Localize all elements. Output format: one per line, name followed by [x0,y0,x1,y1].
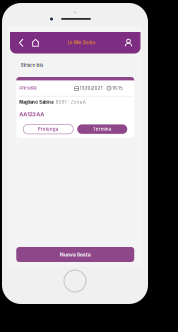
button[interactable]: Profile [120,32,136,53]
staticText: AA123AA [19,111,44,117]
staticText: Fine sosta: [19,86,37,90]
staticText: Nuova Sosta [60,251,91,258]
button[interactable]: Prolunga [23,124,73,134]
staticText: Le Mie Soste [68,40,96,45]
button[interactable]: Termina [77,124,127,134]
staticText: 8091 - Zona A [56,100,86,105]
staticText: Prolunga [38,126,59,132]
staticText: Magliano Sabina [19,100,53,105]
staticText: Termina [93,126,112,132]
button[interactable]: Home [28,32,43,53]
staticText: 13/10/2021 [79,86,103,91]
button[interactable]: Nuova Sosta [16,247,134,262]
button[interactable]: Back [15,32,28,53]
staticText: Strisce blu [20,63,43,68]
staticText: 16:15 [111,86,123,91]
